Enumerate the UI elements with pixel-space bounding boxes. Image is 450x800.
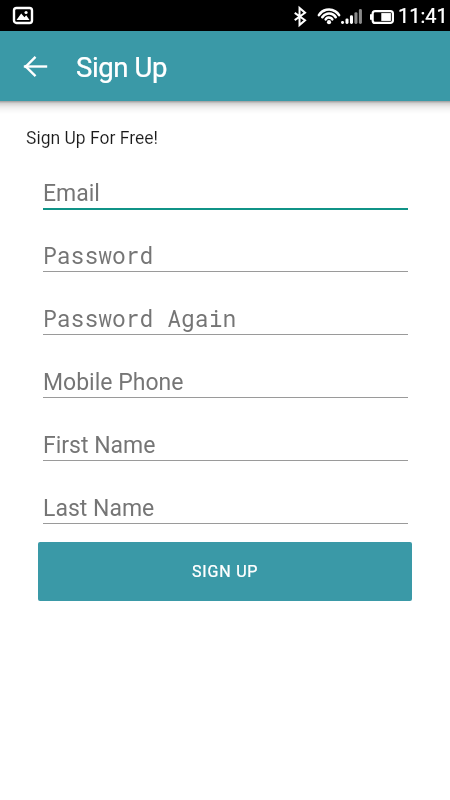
button[interactable]: Password	[0, 224, 450, 287]
button[interactable]: Email	[0, 161, 450, 224]
staticText: SIGN UP	[192, 562, 259, 581]
staticText: Last Name	[43, 495, 155, 522]
staticText: 11:41	[398, 4, 448, 27]
button[interactable]: Back	[13, 44, 57, 88]
button[interactable]: Mobile Phone	[0, 350, 450, 413]
staticText: Mobile Phone	[43, 369, 184, 396]
staticText: Sign Up For Free!	[26, 128, 159, 149]
button[interactable]: Last Name	[0, 476, 450, 539]
button[interactable]: Password Again	[0, 287, 450, 350]
button[interactable]: SIGN UP	[38, 542, 412, 601]
staticText: Email	[43, 180, 100, 207]
staticText: Password	[43, 240, 154, 270]
staticText: Password Again	[43, 303, 237, 333]
button[interactable]: First Name	[0, 413, 450, 476]
staticText: First Name	[43, 432, 156, 459]
staticText: Sign Up	[76, 51, 167, 83]
